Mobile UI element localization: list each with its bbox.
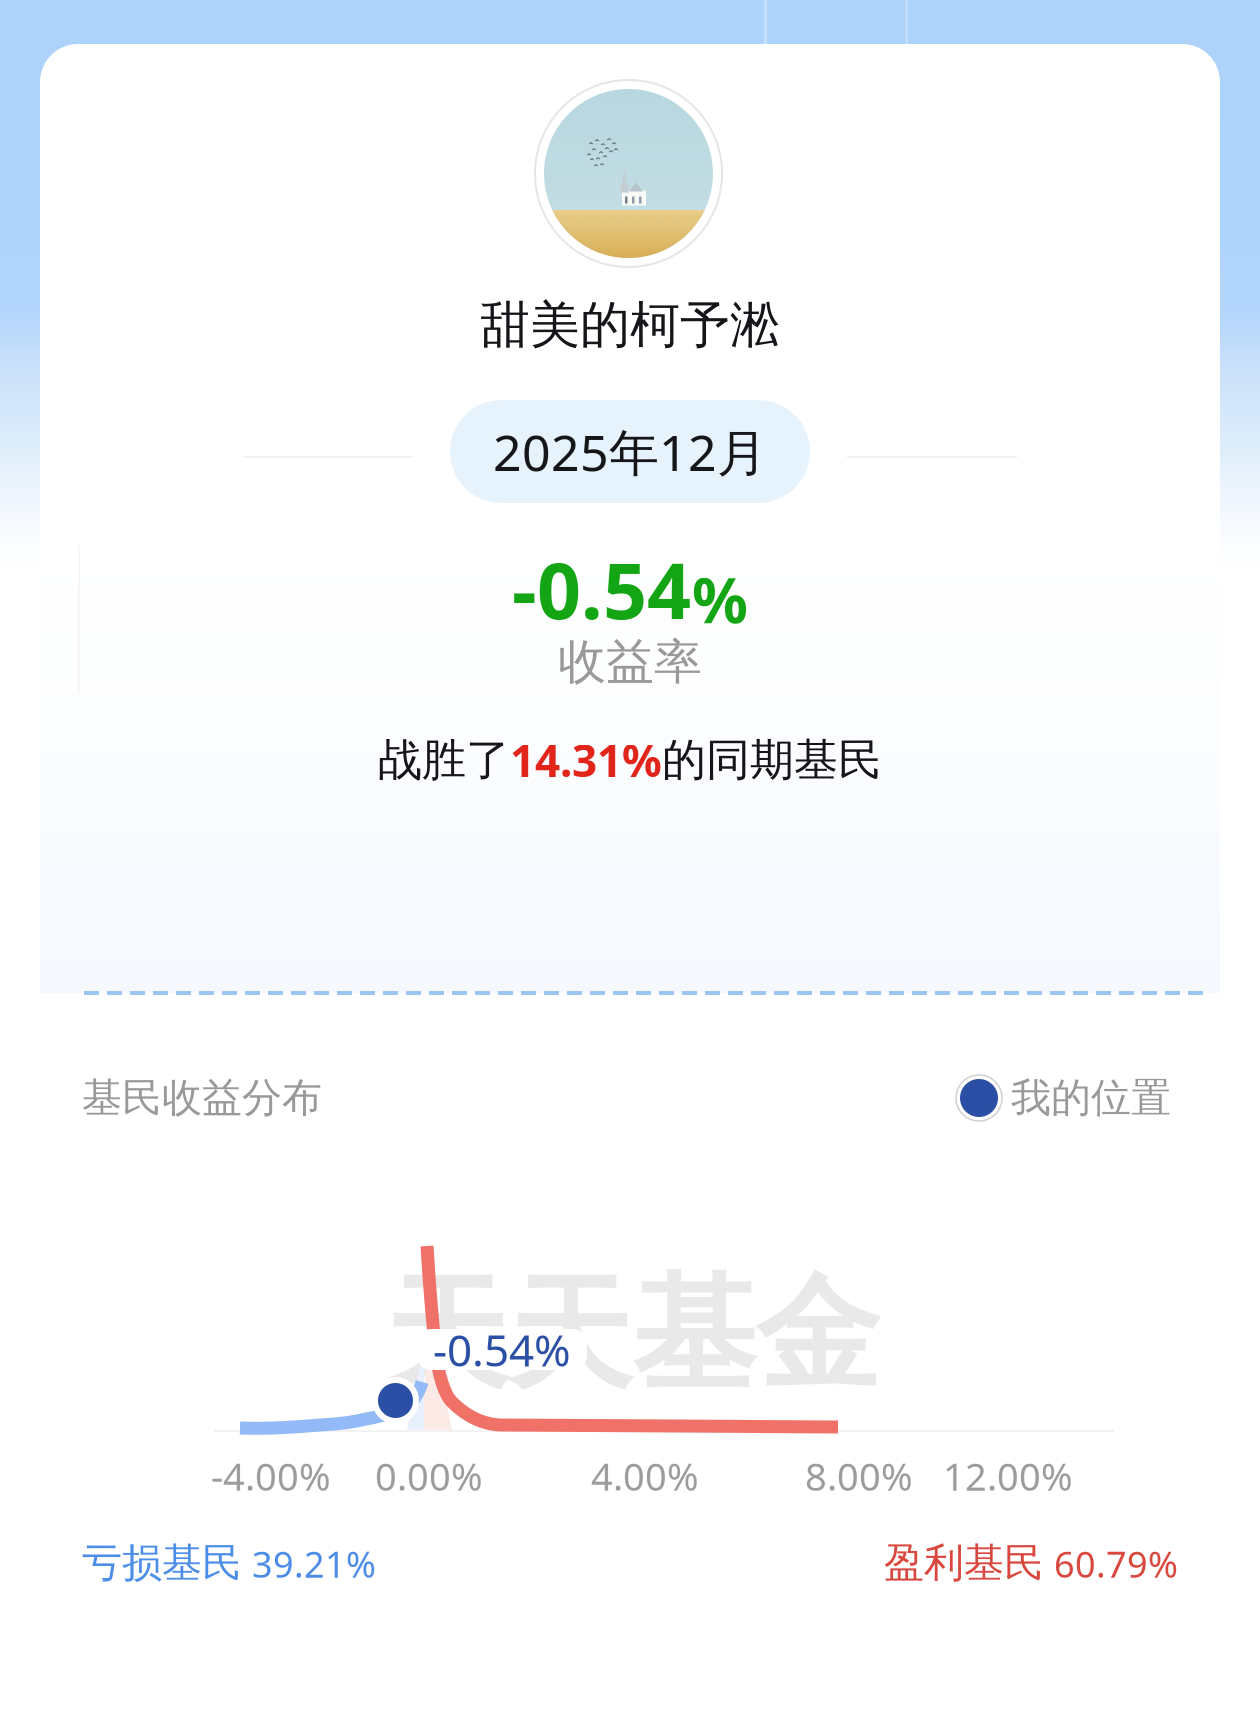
staticText: % — [692, 557, 748, 641]
staticText: 的同期基民 — [662, 732, 882, 788]
staticText: 12.00% — [943, 1450, 1073, 1502]
staticText: -0.54 — [512, 537, 691, 641]
staticText: 战胜了 — [378, 732, 510, 788]
staticText: 盈利基民 — [884, 1538, 1044, 1588]
staticText: -4.00% — [211, 1450, 331, 1502]
staticText: 0.00% — [375, 1450, 483, 1502]
staticText: 基民收益分布 — [82, 1073, 322, 1123]
staticText: 60.79% — [1054, 1539, 1178, 1588]
staticText: 甜美的柯予淞 — [480, 293, 780, 356]
staticText: 天天基金 — [384, 1257, 880, 1413]
staticText: 4.00% — [591, 1450, 699, 1502]
staticText: 收益率 — [558, 632, 702, 692]
staticText: 8.00% — [805, 1450, 913, 1502]
staticText: 14.31% — [510, 730, 662, 790]
staticText: 我的位置 — [1011, 1073, 1171, 1123]
staticText: 2025年12月 — [493, 417, 767, 485]
staticText: 亏损基民 — [82, 1538, 242, 1588]
staticText: -0.54% — [433, 1319, 571, 1379]
staticText: 39.21% — [252, 1539, 376, 1588]
